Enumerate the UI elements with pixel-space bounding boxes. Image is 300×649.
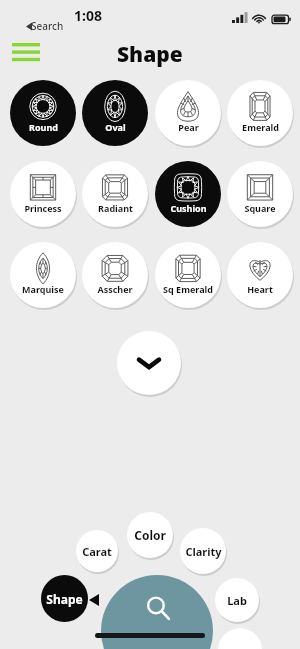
button[interactable]: Sq Emerald [155,242,221,308]
button[interactable]: Round [10,80,76,146]
staticText: Lab [227,593,247,608]
staticText: Square [244,202,276,214]
button[interactable]: Oval [82,80,148,146]
button[interactable]: Carat [76,530,118,572]
staticText: Shape [117,40,183,69]
staticText: Asscher [97,283,133,295]
staticText: Clarity [185,544,222,559]
staticText: Round [29,121,58,133]
button[interactable]: Lab [215,578,259,622]
button[interactable]: Clarity [180,528,226,574]
staticText: 1:08 [74,6,102,25]
button[interactable]: Radiant [82,161,148,227]
staticText: Oval [105,121,126,133]
button[interactable]: Princess [10,161,76,227]
staticText: Cushion [170,202,207,214]
button[interactable]: Marquise [10,242,76,308]
button[interactable]: Menu [8,38,44,66]
staticText: Color [134,527,166,543]
button[interactable]: Show more shapes [117,331,181,395]
button[interactable]: Shape [41,575,88,622]
button[interactable]: Cushion [155,161,221,227]
staticText: Heart [247,283,273,295]
button[interactable]: Square [227,161,293,227]
staticText: Pear [178,121,199,133]
button[interactable]: Color [127,512,173,558]
button[interactable]: Asscher [82,242,148,308]
staticText: Search [31,19,64,33]
staticText: Princess [24,202,62,214]
staticText: Marquise [22,283,64,295]
button[interactable]: Search [101,575,213,649]
staticText: Shape [46,591,83,607]
button[interactable]: Pear [155,80,221,146]
staticText: Sq Emerald [163,283,213,295]
button[interactable]: Emerald [227,80,293,146]
button[interactable]: Heart [227,242,293,308]
staticText: Carat [82,544,112,559]
staticText: Radiant [98,202,133,214]
staticText: Emerald [242,121,279,133]
